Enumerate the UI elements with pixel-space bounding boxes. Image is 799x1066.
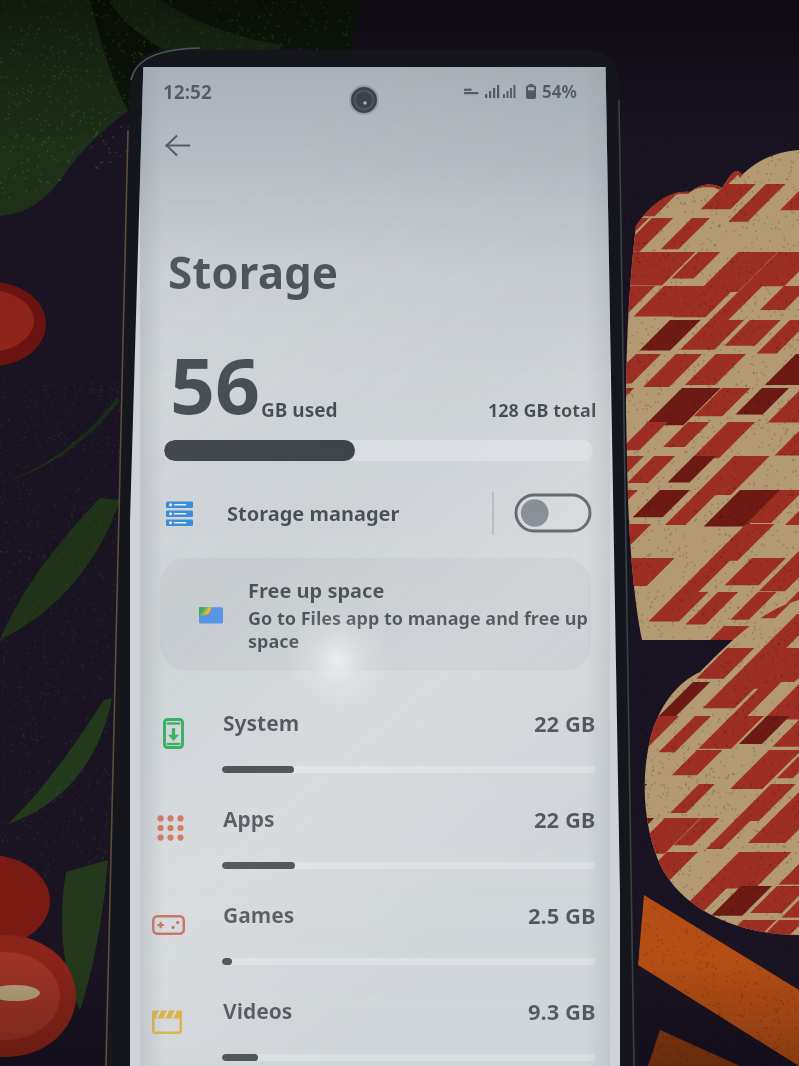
- staticText: 128 GB total: [488, 398, 597, 423]
- staticText: Storage: [168, 242, 339, 302]
- staticText: Free up space: [248, 577, 385, 604]
- button[interactable]: Storage manager toggle: [516, 495, 590, 531]
- staticText: Go to Files app to manage and free up sp…: [248, 606, 591, 653]
- staticText: 54%: [542, 80, 577, 103]
- staticText: 22 GB: [534, 804, 596, 834]
- staticText: System: [223, 709, 300, 738]
- button[interactable]: Free up space: [160, 558, 591, 671]
- staticText: Storage manager: [227, 500, 400, 527]
- staticText: 56: [170, 332, 261, 437]
- staticText: 9.3 GB: [528, 996, 596, 1026]
- staticText: 2.5 GB: [528, 900, 596, 930]
- staticText: Games: [223, 901, 295, 930]
- button[interactable]: Games: [140, 892, 610, 988]
- staticText: Apps: [223, 805, 275, 834]
- button[interactable]: Storage manager: [140, 482, 610, 544]
- button[interactable]: Videos: [140, 988, 610, 1066]
- staticText: GB used: [261, 397, 338, 423]
- staticText: 12:52: [163, 79, 212, 105]
- button[interactable]: System: [140, 700, 610, 796]
- button[interactable]: Back: [151, 119, 203, 171]
- staticText: 22 GB: [534, 708, 596, 738]
- button[interactable]: Apps: [140, 796, 610, 892]
- staticText: Videos: [223, 997, 293, 1026]
